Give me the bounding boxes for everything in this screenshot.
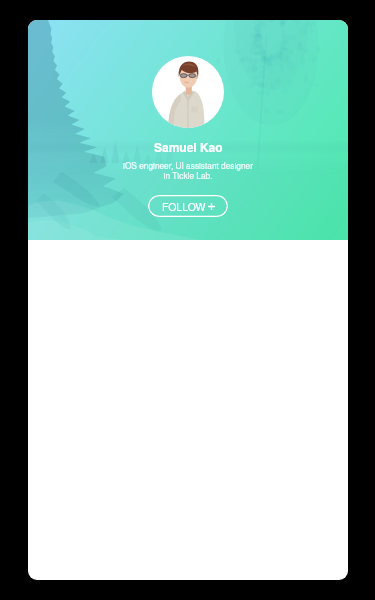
staticText: FOLLOW [162,199,206,214]
button[interactable]: FOLLOW [148,195,228,217]
staticText: iOS engineer, UI assistant designer in T… [123,159,253,181]
staticText: Samuel Kao [154,138,223,155]
